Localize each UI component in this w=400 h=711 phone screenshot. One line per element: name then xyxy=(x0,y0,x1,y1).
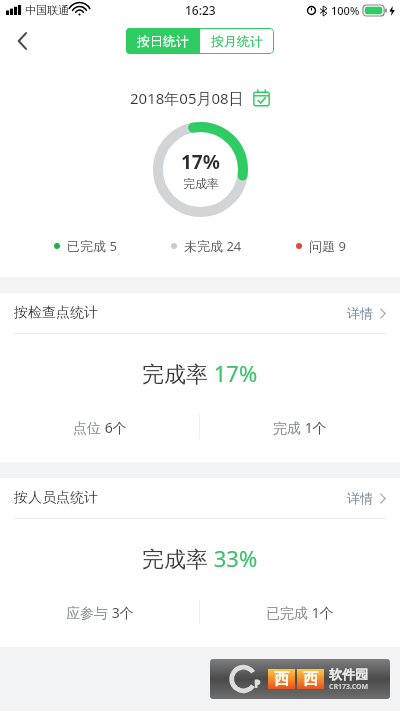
staticText: 已完成 5 xyxy=(67,237,117,255)
staticText: 已完成 1个 xyxy=(266,603,334,622)
staticText: 西 xyxy=(274,670,289,689)
staticText: 完成率 17% xyxy=(142,358,258,388)
button[interactable]: 按检查点统计 xyxy=(0,293,400,333)
staticText: 17% xyxy=(181,149,220,175)
staticText: 详情 xyxy=(347,305,373,321)
button[interactable]: 按日统计 xyxy=(126,28,200,54)
staticText: 软件园 xyxy=(329,666,368,682)
staticText: 按日统计 xyxy=(137,33,189,49)
staticText: 西 xyxy=(303,670,318,689)
staticText: 完成率 33% xyxy=(142,543,258,573)
staticText: 应参与 3个 xyxy=(66,603,134,622)
staticText: 100% xyxy=(331,3,360,18)
staticText: 未完成 24 xyxy=(184,237,242,255)
staticText: 详情 xyxy=(347,490,373,506)
staticText: CR173.COM xyxy=(329,682,369,692)
button[interactable]: 按月统计 xyxy=(200,28,274,54)
staticText: 问题 9 xyxy=(309,237,346,255)
button[interactable]: 按人员点统计 xyxy=(0,478,400,518)
staticText: 按月统计 xyxy=(211,33,263,49)
staticText: 点位 6个 xyxy=(73,418,127,437)
other: 选择日期 xyxy=(253,90,270,107)
staticText: 按人员点统计 xyxy=(14,489,98,507)
button[interactable]: 2018年05月08日 xyxy=(122,84,278,112)
staticText: 完成 1个 xyxy=(273,418,327,437)
staticText: 16:23 xyxy=(185,2,216,18)
staticText: 中国联通 xyxy=(25,3,69,17)
button[interactable]: 返回 xyxy=(0,20,44,62)
staticText: 2018年05月08日 xyxy=(130,88,244,108)
staticText: 完成率 xyxy=(183,176,219,191)
staticText: 按检查点统计 xyxy=(14,304,98,322)
